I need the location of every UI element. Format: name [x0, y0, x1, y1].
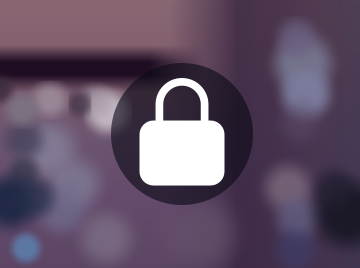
button[interactable]: Unlock to view	[102, 54, 262, 214]
